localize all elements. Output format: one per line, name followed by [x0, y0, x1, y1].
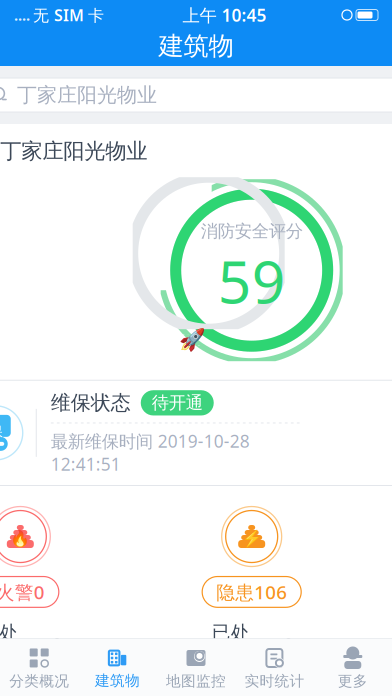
staticText: 无 SIM 卡	[33, 4, 104, 26]
staticText: 已处理	[0, 621, 18, 667]
button[interactable]: 🔥	[0, 505, 59, 607]
staticText: 待处理	[212, 677, 250, 696]
staticText: 🔥	[10, 530, 30, 548]
staticText: 59	[218, 242, 286, 320]
staticText: 火警0	[0, 579, 45, 604]
button[interactable]: ⚡	[202, 505, 301, 607]
staticText: 地图监控	[166, 672, 226, 690]
staticText: ....	[14, 5, 30, 25]
staticText: 0	[283, 632, 294, 657]
staticText: 分类概况	[9, 672, 69, 690]
button[interactable]: 地图监控	[157, 643, 235, 694]
button[interactable]: 分类概况	[0, 643, 78, 694]
button[interactable]: 建筑物	[78, 643, 157, 693]
staticText: 丁家庄阳光物业	[17, 83, 157, 107]
staticText: 建筑物	[158, 30, 233, 61]
button[interactable]: 实时统计	[235, 643, 314, 694]
button[interactable]: 建筑物	[0, 26, 392, 66]
button[interactable]: 丁家庄阳光物业	[0, 78, 392, 112]
staticText: 0	[52, 686, 63, 696]
staticText: 0	[52, 632, 63, 657]
staticText: 建筑物	[95, 671, 140, 689]
staticText: 上午 10:45	[182, 3, 266, 26]
staticText: 维保状态	[51, 391, 131, 415]
staticText: 106	[278, 675, 300, 696]
staticText: 🚀	[179, 328, 206, 352]
staticText: 待处理	[0, 675, 18, 696]
staticText: 实时统计	[244, 672, 304, 690]
staticText: 隐患106	[216, 579, 287, 604]
staticText: 最新维保时间 2019-10-28 12:41:51	[51, 429, 250, 475]
staticText: 保	[0, 423, 3, 441]
staticText: 丁家庄阳光物业	[0, 138, 147, 164]
staticText: 待开通	[152, 392, 203, 413]
staticText: 消防安全评分	[201, 221, 303, 242]
staticText: 已处理	[212, 621, 250, 667]
button[interactable]: 更多	[314, 643, 392, 694]
staticText: 更多	[338, 672, 368, 690]
staticText: ⚡	[242, 530, 262, 548]
